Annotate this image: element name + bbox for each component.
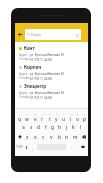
button[interactable]: l [77, 122, 84, 132]
staticText: Адрес: [19, 91, 30, 95]
staticText: n [65, 134, 69, 141]
staticText: t [49, 116, 51, 122]
staticText: r [41, 116, 44, 122]
staticText: z [26, 134, 29, 141]
staticText: f [45, 124, 47, 131]
button[interactable]: m [71, 132, 79, 142]
button[interactable]: 0 [81, 112, 88, 122]
staticText: b [58, 134, 61, 141]
staticText: q [18, 116, 21, 122]
staticText: 6 [56, 112, 58, 115]
button[interactable]: 5 [46, 112, 53, 122]
button[interactable]: Clear search [73, 31, 81, 39]
button[interactable]: v [47, 132, 55, 142]
staticText: 4 [42, 112, 44, 115]
staticText: a [22, 124, 25, 131]
staticText: h [58, 124, 62, 131]
staticText: 1 [19, 112, 21, 115]
button[interactable]: d [35, 122, 42, 132]
staticText: ул. Кузнеца Иванова 56 [30, 91, 65, 95]
staticText: 01/7/8 11 44 88 [30, 58, 52, 62]
staticText: y [55, 116, 58, 122]
button[interactable]: Кант [15, 43, 88, 62]
staticText: Адрес: [19, 72, 30, 76]
button[interactable]: Back [15, 29, 25, 40]
button[interactable]: Кирпич [15, 62, 88, 81]
button[interactable]: 6 [53, 112, 60, 122]
staticText: ?123 [16, 145, 23, 149]
staticText: Кант [24, 45, 35, 51]
staticText: Эпицентр [24, 83, 46, 89]
staticText: i [70, 116, 72, 122]
staticText: Телефон: [19, 76, 30, 81]
staticText: ул. Кузнеца Иванова 56 [30, 72, 65, 76]
button[interactable]: Voice input [24, 142, 28, 152]
staticText: Кирпич [24, 64, 42, 70]
staticText: c [42, 134, 45, 141]
staticText: x [34, 134, 37, 141]
staticText: j [66, 124, 68, 131]
staticText: Поиск [31, 32, 42, 37]
staticText: 01/7/8 11 44 88 [30, 96, 52, 100]
staticText: , [32, 145, 34, 150]
button[interactable]: f [42, 122, 49, 132]
button[interactable]: a [19, 122, 27, 132]
button[interactable]: 4 [39, 112, 46, 122]
button[interactable]: Поиск [25, 29, 81, 40]
button[interactable]: s [27, 122, 35, 132]
staticText: o [76, 116, 79, 122]
staticText: Адрес: [19, 53, 30, 57]
staticText: p [83, 116, 86, 122]
staticText: 5 [49, 112, 51, 115]
button[interactable]: 7 [60, 112, 67, 122]
button[interactable]: , [28, 142, 37, 152]
staticText: 2 [26, 112, 28, 115]
staticText: 9 [77, 112, 79, 115]
staticText: d [37, 124, 40, 131]
staticText: u [62, 116, 66, 122]
staticText: v [50, 134, 53, 141]
button[interactable]: n [63, 132, 71, 142]
staticText: s [30, 124, 33, 131]
button[interactable]: Shift [15, 132, 24, 142]
staticText: g [51, 124, 54, 131]
button[interactable]: b [55, 132, 63, 142]
staticText: 3 [35, 112, 37, 115]
staticText: . [71, 145, 73, 150]
button[interactable]: j [63, 122, 70, 132]
staticText: m [73, 134, 78, 141]
button[interactable]: ?123 [15, 142, 24, 152]
staticText: Телефон: [19, 57, 30, 62]
button[interactable]: 9 [74, 112, 81, 122]
staticText: ул. Кузнеца Иванова 56 [30, 53, 65, 57]
staticText: w [25, 116, 29, 122]
staticText: 01/7/8 11 44 88 [30, 77, 52, 81]
button[interactable]: Backspace [79, 132, 88, 142]
button[interactable]: 2 [23, 112, 31, 122]
button[interactable]: c [39, 132, 47, 142]
button[interactable]: x [31, 132, 39, 142]
staticText: 7 [63, 112, 65, 115]
button[interactable]: g [49, 122, 56, 132]
staticText: k [72, 124, 75, 131]
button[interactable]: Search [78, 142, 88, 152]
button[interactable]: z [24, 132, 31, 142]
staticText: l [80, 124, 82, 131]
button[interactable]: Эпицентр [15, 81, 88, 100]
staticText: 8 [70, 112, 72, 115]
button[interactable]: k [70, 122, 77, 132]
button[interactable]: h [56, 122, 63, 132]
button[interactable]: 3 [31, 112, 39, 122]
button[interactable]: 1 [15, 112, 23, 122]
staticText: Телефон: [19, 95, 30, 100]
staticText: 0 [84, 112, 86, 115]
staticText: e [34, 116, 37, 122]
button[interactable]: 8 [67, 112, 74, 122]
